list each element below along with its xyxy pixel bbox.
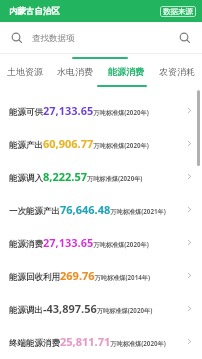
button[interactable]: 能源回收利用269.76万吨标准煤(2014年)	[0, 259, 202, 292]
button[interactable]: 水电消费	[50, 54, 100, 88]
button[interactable]: 能源调出-43,897.56万吨标准煤(2020年)	[0, 292, 202, 325]
staticText: 查找数据项	[32, 33, 75, 44]
button[interactable]: 一次能源产出76,646.48万吨标准煤(2021年)	[0, 193, 202, 226]
button[interactable]: 土地资源	[0, 54, 50, 88]
staticText: 能源调入8,222.57万吨标准煤(2020年)	[9, 169, 183, 184]
button[interactable]: 能源消费	[100, 54, 151, 88]
staticText: 土地资源	[7, 66, 43, 77]
button[interactable]: 农资消耗	[151, 54, 202, 88]
other: Open 能源消费	[185, 238, 194, 247]
button[interactable]: 数据来源	[160, 6, 196, 17]
other: Open 能源产出	[185, 139, 194, 148]
other: Open 一次能源产出	[185, 205, 194, 214]
button[interactable]: Search	[0, 22, 202, 54]
staticText: 水电消费	[57, 66, 93, 77]
button[interactable]: 能源调入8,222.57万吨标准煤(2020年)	[0, 160, 202, 193]
staticText: 农资消耗	[159, 66, 195, 77]
staticText: 能源可供27,133.65万吨标准煤(2020年)	[9, 103, 183, 118]
other: Open 能源可供	[185, 106, 194, 115]
other: Search button	[179, 32, 191, 44]
other: Open 终端能源消费	[185, 337, 194, 346]
button[interactable]: 能源可供27,133.65万吨标准煤(2020年)	[0, 94, 202, 127]
staticText: 内蒙古自治区	[9, 6, 60, 17]
staticText: 终端能源消费25,811.71万吨标准煤(2020年)	[9, 334, 183, 349]
staticText: 一次能源产出76,646.48万吨标准煤(2021年)	[9, 202, 183, 217]
other: Open 能源调入	[185, 172, 194, 181]
other: Open 能源回收利用	[185, 271, 194, 280]
button[interactable]: 能源消费27,133.65万吨标准煤(2020年)	[0, 226, 202, 259]
staticText: 数据来源	[163, 7, 193, 16]
staticText: 能源调出-43,897.56万吨标准煤(2020年)	[9, 301, 183, 316]
staticText: 能源产出60,906.77万吨标准煤(2020年)	[9, 136, 183, 151]
button[interactable]: 能源产出60,906.77万吨标准煤(2020年)	[0, 127, 202, 160]
other: Open 能源调出	[185, 304, 194, 313]
button[interactable]: 终端能源消费25,811.71万吨标准煤(2020年)	[0, 325, 202, 358]
staticText: 能源回收利用269.76万吨标准煤(2014年)	[9, 268, 183, 283]
other: Search	[11, 32, 23, 44]
staticText: 能源消费27,133.65万吨标准煤(2020年)	[9, 235, 183, 250]
staticText: 能源消费	[108, 66, 144, 77]
